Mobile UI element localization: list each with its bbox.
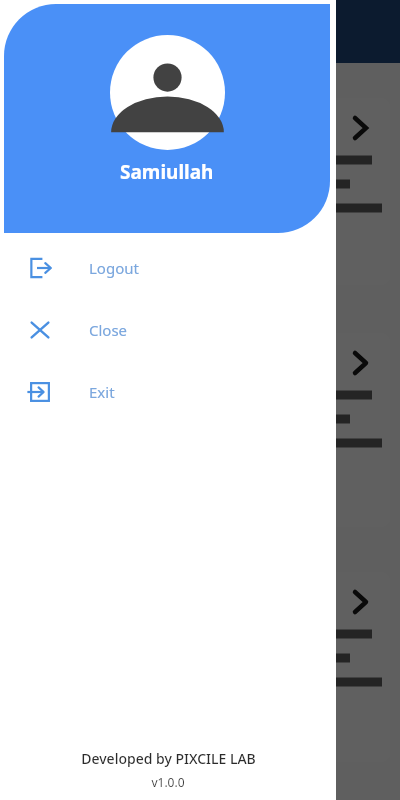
button[interactable] bbox=[250, 572, 390, 762]
other: Close bbox=[29, 319, 51, 341]
button[interactable] bbox=[250, 98, 390, 285]
staticText: Close bbox=[89, 320, 128, 340]
button[interactable]: Logout bbox=[0, 237, 336, 299]
staticText: Exit bbox=[89, 382, 115, 402]
other: Exit bbox=[28, 380, 52, 404]
button[interactable] bbox=[250, 333, 390, 527]
other: Logout bbox=[28, 256, 52, 280]
staticText: Developed by PIXCILE LAB bbox=[81, 749, 256, 768]
staticText: v1.0.0 bbox=[151, 774, 185, 790]
staticText: Samiullah bbox=[120, 159, 214, 185]
button[interactable]: Exit bbox=[0, 361, 336, 423]
button[interactable]: Close bbox=[0, 299, 336, 361]
staticText: Logout bbox=[89, 258, 139, 278]
